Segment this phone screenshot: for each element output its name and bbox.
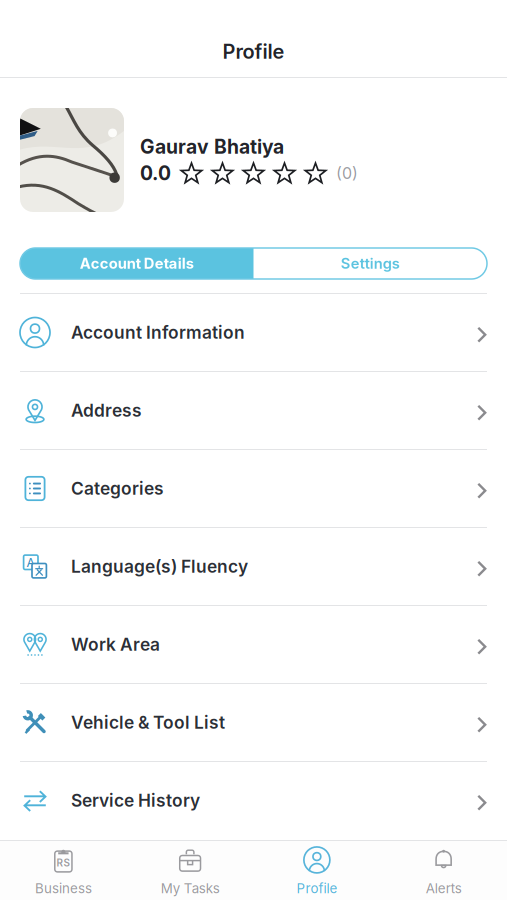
button[interactable]: Account Information bbox=[0, 293, 507, 371]
staticText: My Tasks bbox=[161, 880, 220, 896]
button[interactable]: Service History bbox=[0, 761, 507, 839]
staticText: Settings bbox=[341, 255, 400, 272]
button[interactable]: Account Details bbox=[20, 248, 253, 279]
button[interactable]: RS bbox=[0, 840, 127, 900]
staticText: 0.0 bbox=[140, 161, 171, 185]
button[interactable]: Categories bbox=[0, 449, 507, 527]
staticText: Categories bbox=[71, 478, 164, 499]
staticText: Profile bbox=[222, 39, 284, 64]
staticText: Vehicle & Tool List bbox=[71, 712, 225, 733]
staticText: Business bbox=[35, 880, 92, 896]
staticText: Alerts bbox=[426, 880, 462, 896]
staticText: Work Area bbox=[71, 634, 160, 655]
button[interactable]: My Tasks bbox=[127, 840, 254, 900]
button[interactable]: Address bbox=[0, 371, 507, 449]
button[interactable]: Settings bbox=[253, 248, 487, 279]
staticText: (0) bbox=[336, 163, 358, 183]
button[interactable]: A bbox=[0, 527, 507, 605]
staticText: Profile bbox=[296, 880, 337, 896]
staticText: Account Information bbox=[71, 322, 245, 343]
staticText: Account Details bbox=[80, 255, 194, 272]
button[interactable]: Work Area bbox=[0, 605, 507, 683]
staticText: Language(s) Fluency bbox=[71, 556, 248, 577]
staticText: Service History bbox=[71, 790, 200, 811]
button[interactable]: Profile bbox=[253, 840, 380, 900]
staticText: RS bbox=[56, 857, 70, 869]
staticText: Gaurav Bhatiya bbox=[140, 135, 284, 158]
button[interactable]: Vehicle & Tool List bbox=[0, 683, 507, 761]
button[interactable]: Alerts bbox=[380, 840, 507, 900]
staticText: A bbox=[27, 554, 35, 570]
staticText: Address bbox=[71, 400, 142, 421]
